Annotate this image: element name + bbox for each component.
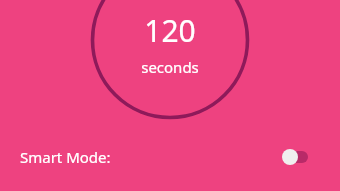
staticText: 120	[144, 10, 196, 51]
button[interactable]: Toggle	[282, 147, 312, 167]
button[interactable]: Smart Mode:	[0, 140, 340, 174]
staticText: Smart Mode:	[20, 147, 111, 167]
staticText: seconds	[141, 57, 199, 77]
